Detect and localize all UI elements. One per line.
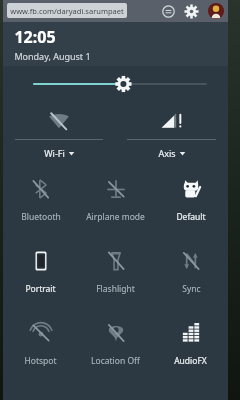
- staticText: Default: [176, 211, 206, 223]
- staticText: Airplane mode: [86, 211, 145, 223]
- staticText: Hotspot: [24, 355, 57, 367]
- staticText: Monday, August 1: [14, 50, 91, 62]
- staticText: Portrait: [25, 283, 56, 295]
- button[interactable]: Sync: [153, 236, 228, 308]
- button[interactable]: Hotspot: [3, 308, 78, 380]
- button[interactable]: Bluetooth: [3, 164, 78, 236]
- button[interactable]: Settings: [184, 4, 199, 19]
- button[interactable]: Data saver: [162, 5, 175, 18]
- button[interactable]: Airplane mode: [78, 164, 153, 236]
- button[interactable]: Portrait: [3, 236, 78, 308]
- staticText: www.fb.com/daryadi.sarumpaet: [10, 6, 124, 16]
- button[interactable]: Default: [153, 164, 228, 236]
- button[interactable]: Flashlight: [78, 236, 153, 308]
- staticText: Bluetooth: [21, 211, 61, 223]
- button[interactable]: Brightness: [3, 66, 228, 102]
- staticText: Flashlight: [96, 283, 135, 295]
- staticText: Axis: [158, 147, 176, 159]
- button[interactable]: Account: [208, 3, 224, 19]
- staticText: 12:05: [14, 26, 56, 48]
- button[interactable]: Location Off: [78, 308, 153, 380]
- staticText: Wi-Fi: [44, 147, 65, 159]
- button[interactable]: Wi-Fi: [3, 102, 115, 164]
- staticText: Location Off: [91, 355, 140, 367]
- button[interactable]: AudioFX: [153, 308, 228, 380]
- button[interactable]: Axis: [115, 102, 228, 164]
- staticText: Sync: [182, 283, 201, 295]
- staticText: AudioFX: [174, 355, 207, 367]
